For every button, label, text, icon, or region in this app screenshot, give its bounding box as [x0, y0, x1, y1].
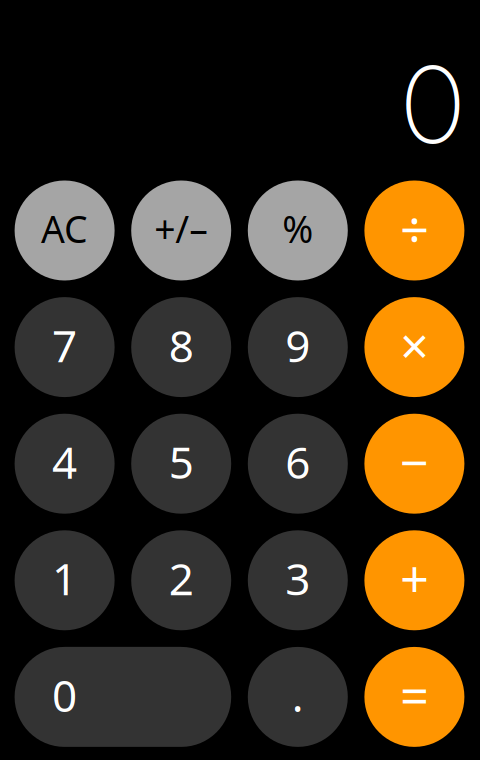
staticText: 0 [402, 41, 463, 168]
staticText: 8 [169, 316, 194, 374]
staticText: 4 [52, 432, 77, 491]
button[interactable]: Minus [364, 414, 464, 514]
button[interactable]: 8 [131, 297, 231, 397]
staticText: 9 [285, 316, 310, 374]
button[interactable]: 5 [131, 414, 231, 514]
button[interactable]: Percent [248, 180, 348, 280]
button[interactable]: Multiply [364, 297, 464, 397]
button[interactable]: 7 [15, 297, 115, 397]
staticText: +/– [154, 204, 208, 253]
button[interactable]: Plus [364, 530, 464, 630]
button[interactable]: 0 [15, 647, 231, 747]
staticText: 7 [52, 316, 77, 374]
button[interactable]: 9 [248, 297, 348, 397]
staticText: 3 [285, 549, 310, 607]
button[interactable]: Decimal point [248, 647, 348, 747]
staticText: . [292, 666, 304, 724]
button[interactable]: Equals [364, 647, 464, 747]
staticText: × [400, 311, 429, 379]
button[interactable]: 2 [131, 530, 231, 630]
button[interactable]: 3 [248, 530, 348, 630]
button[interactable]: 6 [248, 414, 348, 514]
staticText: 1 [52, 549, 77, 607]
button[interactable]: All clear [15, 180, 115, 280]
staticText: AC [41, 204, 88, 253]
staticText: = [400, 661, 429, 729]
staticText: 2 [169, 549, 194, 607]
button[interactable]: Plus minus [131, 180, 231, 280]
staticText: − [400, 428, 429, 495]
staticText: 5 [169, 432, 194, 491]
staticText: 0 [52, 666, 77, 724]
button[interactable]: 1 [15, 530, 115, 630]
staticText: 6 [285, 432, 310, 491]
button[interactable]: 4 [15, 414, 115, 514]
staticText: % [282, 204, 313, 253]
staticText: ÷ [400, 195, 429, 262]
button[interactable]: Divide [364, 180, 464, 280]
staticText: + [400, 545, 429, 612]
